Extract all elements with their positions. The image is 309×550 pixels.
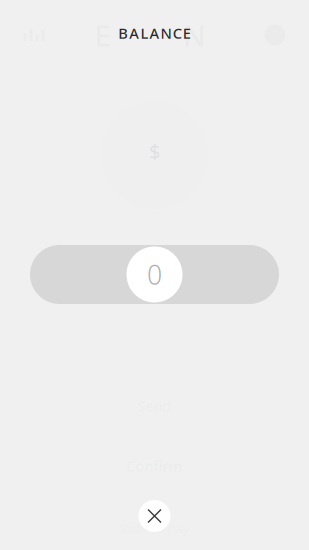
- staticText: Slide to pay: [119, 519, 189, 537]
- staticText: N: [183, 15, 206, 54]
- staticText: $: [149, 138, 160, 164]
- staticText: BALANCE: [118, 23, 191, 43]
- staticText: 0: [147, 257, 162, 292]
- button[interactable]: Close: [132, 494, 176, 538]
